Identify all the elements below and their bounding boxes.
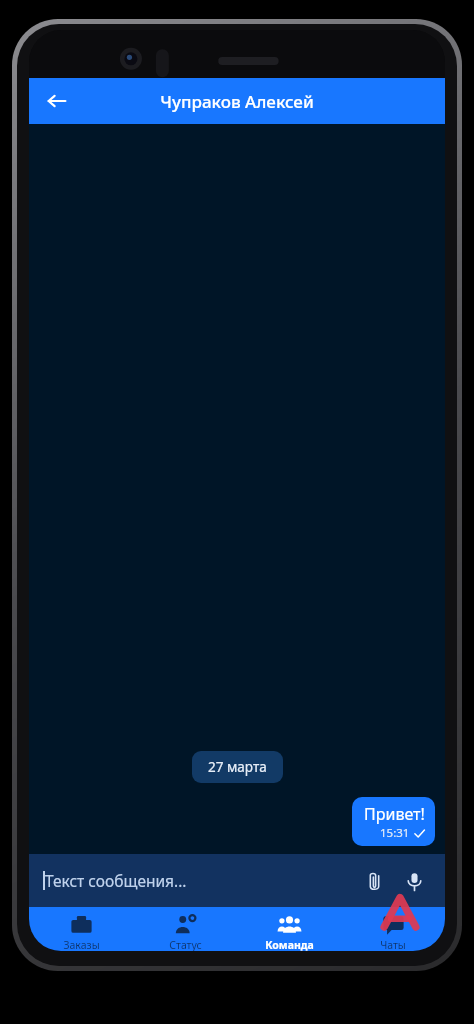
button[interactable]: 27 марта (192, 751, 283, 783)
button[interactable]: Текст сообщения... (43, 870, 357, 891)
staticText: Чупраков Алексей (160, 90, 314, 113)
button[interactable]: Статус (133, 907, 237, 951)
button[interactable]: Voice message (397, 864, 431, 898)
staticText: Статус (169, 938, 202, 951)
staticText: 27 марта (208, 758, 267, 776)
staticText: Чаты (380, 938, 406, 951)
button[interactable]: Привет! (352, 797, 435, 846)
button[interactable]: Back (37, 81, 77, 121)
staticText: Заказы (63, 938, 100, 951)
staticText: Привет! (364, 803, 425, 825)
button[interactable]: Чаты (341, 907, 445, 951)
button[interactable]: Команда (237, 907, 341, 951)
button[interactable]: Attach file (357, 864, 391, 898)
staticText: Текст сообщения... (45, 870, 187, 891)
staticText: 15:31 (380, 825, 410, 841)
staticText: Команда (265, 938, 314, 951)
button[interactable]: Заказы (29, 907, 133, 951)
